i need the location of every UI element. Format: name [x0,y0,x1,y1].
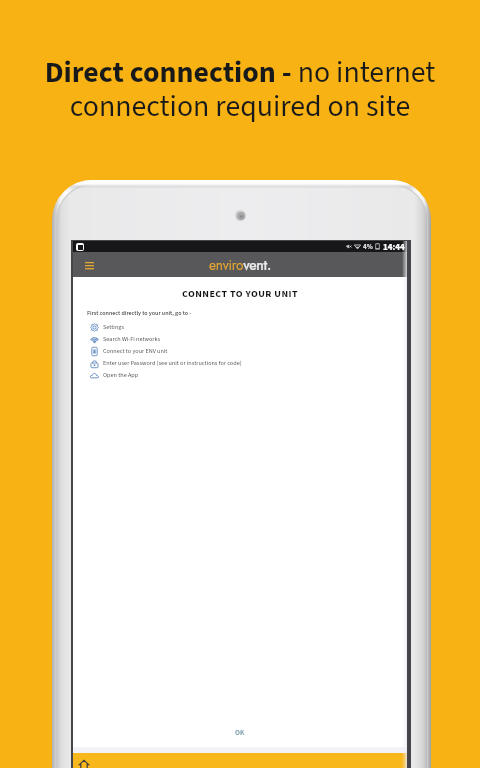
staticText: Settings [103,323,124,332]
staticText: 4% [363,242,373,252]
button[interactable]: Connect to your ENV unit [73,345,407,357]
staticText: Enter user Password (see unit or instruc… [103,359,242,368]
staticText: Direct connection - no internet connecti… [0,51,480,128]
staticText: envirovent. [209,255,272,275]
button[interactable]: Search Wi-Fi networks [73,333,407,345]
staticText: Open the App [103,371,139,380]
button[interactable]: OK [225,726,255,740]
staticText: First connect directly to your unit, go … [87,309,192,318]
button[interactable]: Settings [73,321,407,333]
button[interactable]: Home [73,753,95,768]
staticText: Connect to your ENV unit [103,347,168,356]
staticText: Search Wi-Fi networks [103,335,161,344]
button[interactable]: Enter user Password (see unit or instruc… [73,357,407,369]
staticText: 14:44 [383,241,405,252]
button[interactable]: Open the App [73,369,407,381]
button[interactable]: Menu [81,257,97,273]
staticText: CONNECT TO YOUR UNIT [73,287,407,301]
staticText: OK [235,728,245,738]
